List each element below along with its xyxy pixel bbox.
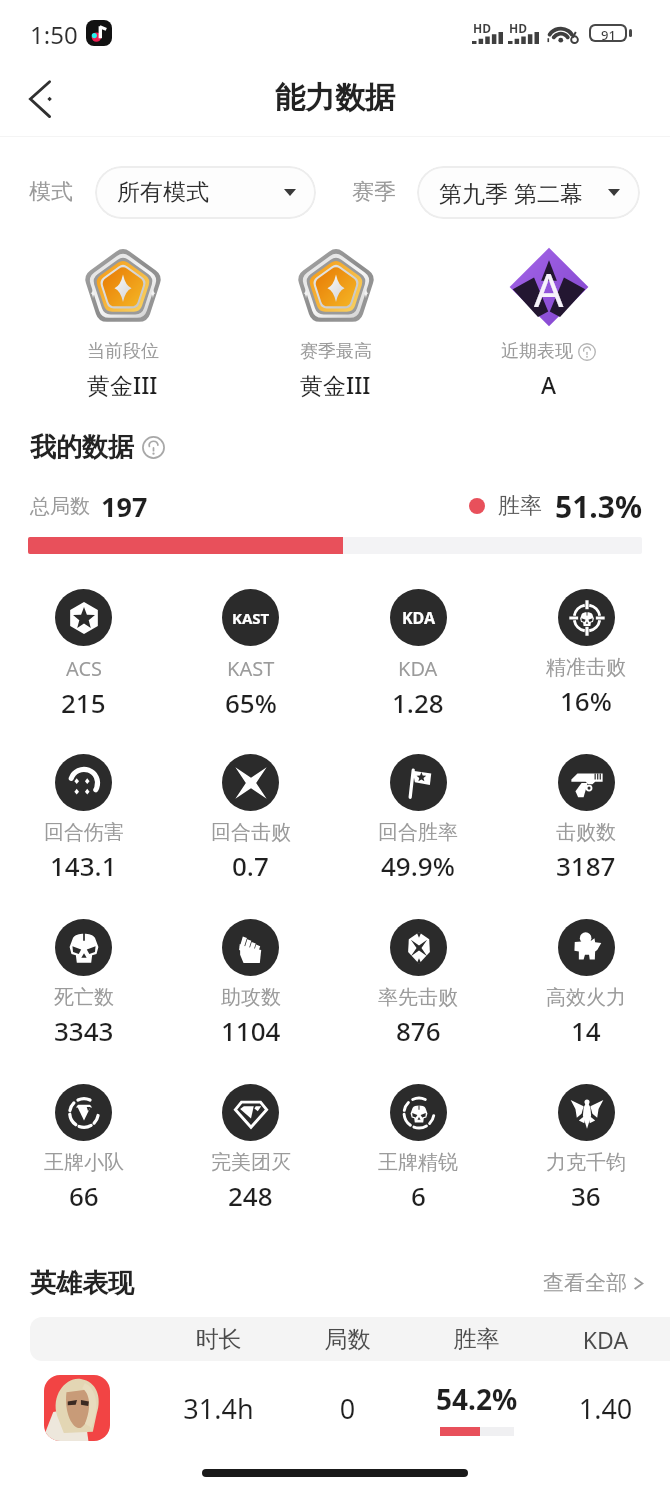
staticText: 31.4h bbox=[154, 1390, 283, 1427]
staticText: 黄金III bbox=[87, 369, 158, 400]
button[interactable]: 回合击败 bbox=[167, 754, 334, 883]
staticText: 模式 bbox=[29, 178, 73, 206]
button[interactable]: 击败数 bbox=[502, 754, 670, 883]
button[interactable]: 高效火力 bbox=[502, 919, 670, 1048]
staticText: 高效火力 bbox=[546, 985, 626, 1010]
staticText: 1.40 bbox=[541, 1390, 670, 1427]
button[interactable]: 回合伤害 bbox=[0, 754, 167, 883]
staticText: ACS bbox=[66, 655, 102, 682]
staticText: 局数 bbox=[283, 1325, 412, 1354]
staticText: 1.28 bbox=[392, 685, 444, 720]
staticText: KDA bbox=[541, 1324, 670, 1355]
button[interactable]: 王牌精锐 bbox=[334, 1084, 502, 1213]
staticText: 1:50 bbox=[30, 18, 78, 51]
staticText: 6 bbox=[411, 1178, 426, 1213]
staticText: KAST bbox=[227, 655, 275, 682]
staticText: 91 bbox=[601, 26, 616, 40]
button[interactable]: 率先击败 bbox=[334, 919, 502, 1048]
staticText: 精准击败 bbox=[546, 655, 626, 680]
staticText: 力克千钧 bbox=[546, 1150, 626, 1175]
staticText: 66 bbox=[69, 1178, 99, 1213]
button[interactable]: ACS bbox=[0, 589, 167, 720]
staticText: 16% bbox=[560, 683, 612, 718]
button[interactable]: 所有模式 bbox=[95, 166, 316, 219]
staticText: 胜率 bbox=[498, 492, 542, 520]
staticText: 能力数据 bbox=[275, 79, 395, 117]
button[interactable]: 完美团灭 bbox=[167, 1084, 334, 1213]
button[interactable]: 死亡数 bbox=[0, 919, 167, 1048]
staticText: 赛季最高 bbox=[300, 340, 372, 363]
staticText: 死亡数 bbox=[54, 985, 114, 1010]
staticText: 0.7 bbox=[232, 848, 269, 883]
staticText: 胜率 bbox=[412, 1325, 541, 1354]
staticText: 当前段位 bbox=[87, 340, 159, 363]
staticText: 回合伤害 bbox=[44, 820, 124, 845]
button[interactable]: 31.4h bbox=[0, 1361, 670, 1455]
staticText: 黄金III bbox=[300, 369, 371, 400]
staticText: A bbox=[541, 369, 557, 400]
staticText: 36 bbox=[571, 1178, 601, 1213]
button[interactable]: 查看全部 bbox=[543, 1270, 645, 1296]
staticText: 0 bbox=[283, 1390, 412, 1427]
staticText: 查看全部 bbox=[543, 1270, 627, 1296]
staticText: 王牌精锐 bbox=[378, 1150, 458, 1175]
staticText: KDA bbox=[398, 655, 438, 682]
staticText: HD bbox=[473, 20, 491, 36]
staticText: 51.3% bbox=[555, 486, 642, 527]
staticText: HD bbox=[509, 20, 527, 36]
staticText: 所有模式 bbox=[117, 178, 209, 207]
staticText: 我的数据 bbox=[30, 431, 134, 464]
staticText: 14 bbox=[571, 1013, 601, 1048]
staticText: A bbox=[534, 258, 564, 321]
staticText: 总局数 bbox=[30, 494, 90, 519]
staticText: 3343 bbox=[54, 1013, 114, 1048]
button[interactable]: Back bbox=[12, 69, 72, 129]
staticText: 完美团灭 bbox=[211, 1150, 291, 1175]
button[interactable]: KAST bbox=[167, 589, 334, 720]
staticText: 助攻数 bbox=[221, 985, 281, 1010]
button[interactable]: 助攻数 bbox=[167, 919, 334, 1048]
button[interactable]: 第九季 第二幕 bbox=[417, 166, 640, 219]
staticText: 赛季 bbox=[352, 178, 396, 206]
staticText: 时长 bbox=[154, 1325, 283, 1354]
staticText: 回合胜率 bbox=[378, 820, 458, 845]
staticText: 54.2% bbox=[436, 1380, 518, 1418]
staticText: 197 bbox=[101, 488, 148, 525]
button[interactable]: 力克千钧 bbox=[502, 1084, 670, 1213]
staticText: 回合击败 bbox=[211, 820, 291, 845]
button[interactable]: KDA bbox=[334, 589, 502, 720]
staticText: 876 bbox=[396, 1013, 441, 1048]
staticText: 65% bbox=[225, 685, 277, 720]
staticText: 第九季 第二幕 bbox=[439, 177, 583, 208]
staticText: 49.9% bbox=[381, 848, 455, 883]
button[interactable]: 回合胜率 bbox=[334, 754, 502, 883]
staticText: 王牌小队 bbox=[44, 1150, 124, 1175]
button[interactable]: 王牌小队 bbox=[0, 1084, 167, 1213]
staticText: 英雄表现 bbox=[30, 1267, 134, 1300]
staticText: 248 bbox=[228, 1178, 273, 1213]
staticText: KDA bbox=[402, 607, 436, 629]
staticText: 215 bbox=[61, 685, 106, 720]
staticText: 143.1 bbox=[50, 848, 117, 883]
staticText: 近期表现 bbox=[501, 340, 573, 363]
staticText: KAST bbox=[232, 608, 270, 628]
button[interactable]: 精准击败 bbox=[502, 589, 670, 718]
staticText: 率先击败 bbox=[378, 985, 458, 1010]
staticText: 3187 bbox=[556, 848, 616, 883]
staticText: 1104 bbox=[221, 1013, 281, 1048]
staticText: 击败数 bbox=[556, 820, 616, 845]
